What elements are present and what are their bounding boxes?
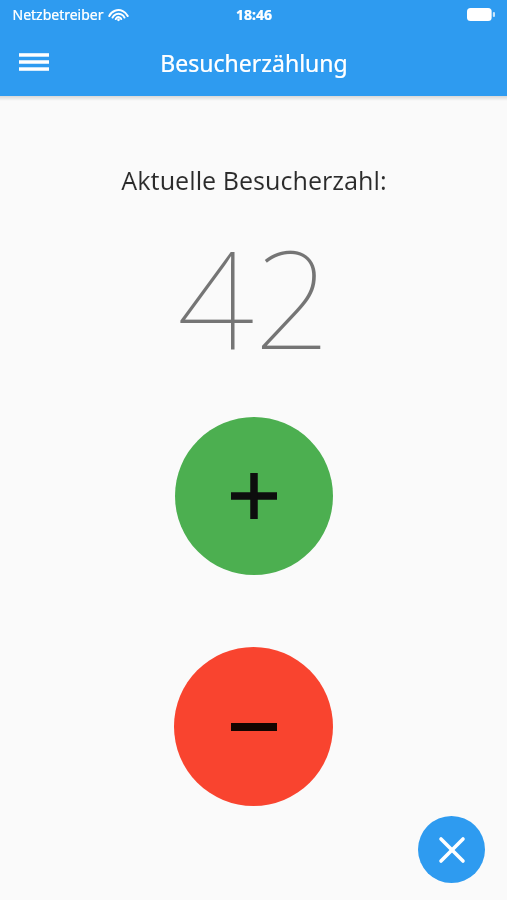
staticText: Besucherzählung: [160, 47, 348, 78]
staticText: Aktuelle Besucherzahl:: [121, 163, 387, 197]
staticText: Netzbetreiber: [12, 5, 104, 24]
button[interactable]: Menu: [8, 36, 60, 88]
button[interactable]: Close: [418, 816, 485, 883]
staticText: 18:46: [236, 5, 272, 24]
staticText: 42: [177, 205, 331, 389]
button[interactable]: Increase count: [175, 417, 333, 575]
button[interactable]: Decrease count: [174, 647, 333, 806]
